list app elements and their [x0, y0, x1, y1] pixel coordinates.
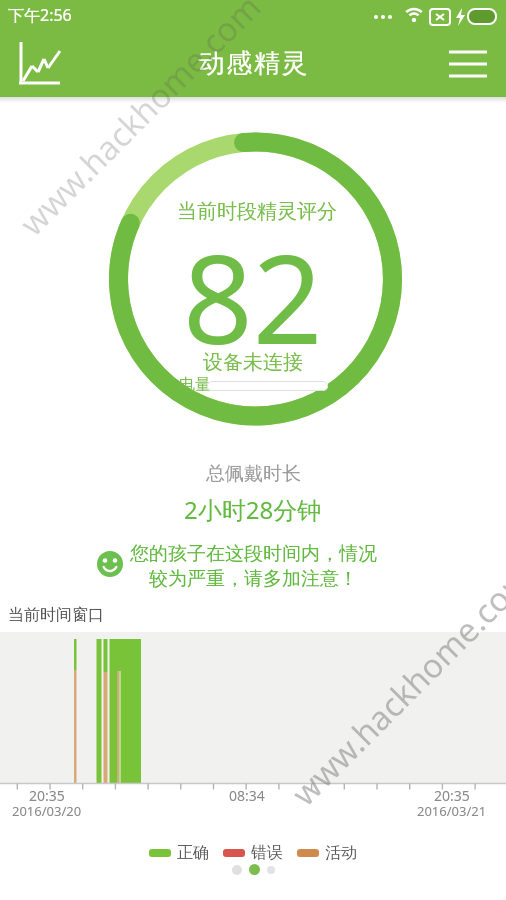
- staticText: 82: [183, 214, 323, 380]
- button[interactable]: 正确: [149, 843, 209, 863]
- staticText: 20:35: [29, 786, 65, 805]
- staticText: 动感精灵: [198, 47, 308, 80]
- staticText: 较为严重，请多加注意！: [149, 567, 358, 591]
- staticText: 下午2:56: [8, 4, 72, 26]
- staticText: 设备未连接: [203, 350, 303, 375]
- staticText: 您的孩子在这段时间内，情况: [130, 542, 377, 566]
- staticText: 错误: [251, 843, 283, 863]
- staticText: 当前时间窗口: [8, 605, 104, 625]
- button[interactable]: 活动: [297, 843, 357, 863]
- staticText: 08:34: [229, 786, 265, 805]
- staticText: 20:35: [434, 786, 470, 805]
- staticText: www.hackhome.com: [9, 0, 270, 245]
- staticText: 2小时28分钟: [184, 493, 322, 526]
- button[interactable]: [440, 39, 496, 89]
- staticText: 正确: [177, 843, 209, 863]
- staticText: 2016/03/21: [417, 802, 487, 820]
- button[interactable]: [8, 36, 70, 92]
- staticText: 电量: [179, 375, 211, 395]
- button[interactable]: 错误: [223, 843, 283, 863]
- staticText: 活动: [325, 843, 357, 863]
- staticText: 总佩戴时长: [206, 462, 301, 486]
- staticText: 当前时段精灵评分: [177, 199, 337, 224]
- staticText: www.hackhome.com: [281, 554, 506, 815]
- staticText: 2016/03/20: [12, 802, 82, 820]
